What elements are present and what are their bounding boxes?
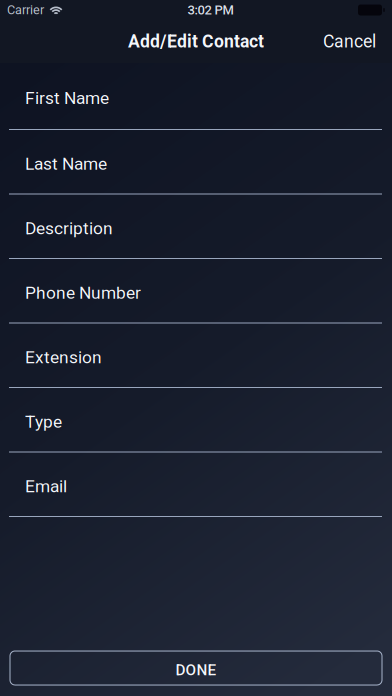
staticText: 3:02 PM — [187, 2, 233, 18]
button[interactable]: Cancel — [307, 20, 392, 63]
staticText: Extension — [25, 347, 102, 367]
button[interactable]: Type — [0, 388, 392, 452]
button[interactable]: Phone Number — [0, 259, 392, 323]
staticText: Add/Edit Contact — [128, 31, 264, 52]
button[interactable]: DONE — [10, 651, 382, 685]
staticText: DONE — [175, 661, 216, 679]
staticText: Type — [25, 412, 62, 432]
button[interactable]: Extension — [0, 323, 392, 388]
staticText: Email — [25, 476, 67, 496]
button[interactable]: Description — [0, 194, 392, 259]
staticText: Carrier — [7, 3, 44, 17]
staticText: Phone Number — [25, 283, 141, 303]
staticText: Cancel — [323, 31, 376, 52]
staticText: Last Name — [25, 154, 107, 174]
button[interactable]: First Name — [0, 63, 392, 130]
staticText: Description — [25, 218, 113, 238]
button[interactable]: Email — [0, 452, 392, 517]
staticText: First Name — [25, 88, 109, 108]
button[interactable]: Last Name — [0, 130, 392, 194]
